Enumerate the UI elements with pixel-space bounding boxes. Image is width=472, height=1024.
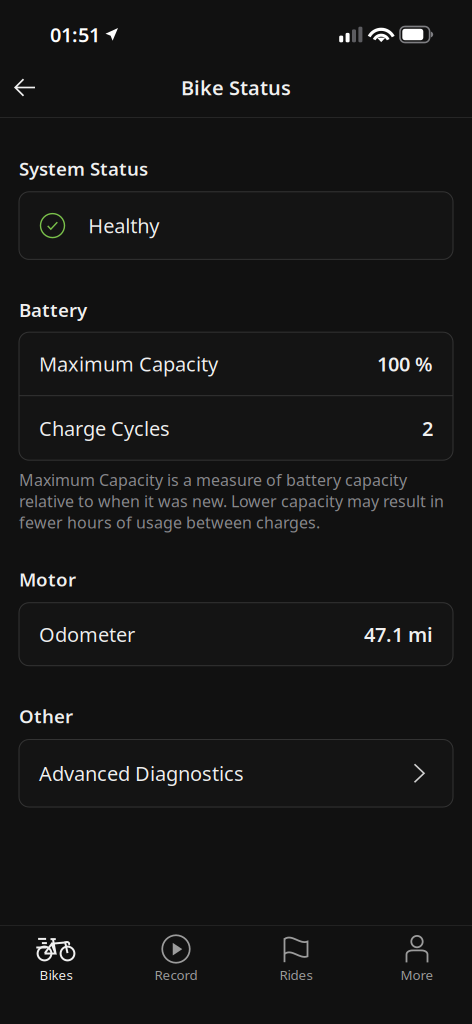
staticText: Bikes: [39, 966, 72, 984]
staticText: More: [400, 966, 433, 984]
staticText: Maximum Capacity: [39, 350, 218, 377]
staticText: Record: [154, 966, 197, 984]
button[interactable]: Bikes: [0, 926, 112, 998]
staticText: Battery: [19, 297, 87, 322]
staticText: Odometer: [39, 621, 135, 647]
button[interactable]: More: [357, 926, 472, 998]
staticText: 100 %: [377, 350, 433, 377]
staticText: Maximum Capacity is a measure of battery…: [19, 469, 444, 533]
staticText: 01:51: [50, 21, 100, 48]
staticText: Charge Cycles: [39, 415, 170, 441]
staticText: Rides: [279, 966, 312, 984]
button[interactable]: Record: [112, 926, 240, 998]
staticText: 47.1 mi: [364, 621, 433, 647]
staticText: System Status: [19, 156, 148, 181]
staticText: Advanced Diagnostics: [39, 760, 244, 787]
button[interactable]: Advanced Diagnostics: [0, 739, 472, 807]
staticText: Motor: [19, 567, 76, 592]
staticText: Other: [19, 704, 73, 728]
button[interactable]: Back: [0, 58, 50, 117]
staticText: Bike Status: [181, 74, 291, 101]
staticText: Healthy: [88, 212, 159, 239]
button[interactable]: Rides: [240, 926, 352, 998]
staticText: 2: [422, 415, 433, 441]
